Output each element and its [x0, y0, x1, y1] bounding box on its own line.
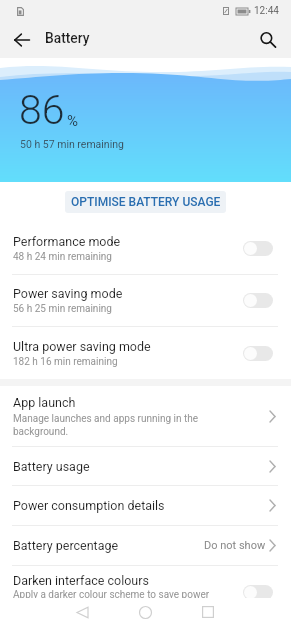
staticText: OPTIMISE BATTERY USAGE — [71, 195, 221, 209]
staticText: Power saving mode — [13, 286, 123, 301]
button[interactable]: Battery percentage — [0, 526, 291, 565]
staticText: 50 h 57 min remaining — [20, 138, 124, 150]
staticText: 12:44 — [254, 5, 279, 17]
staticText: Darken interface colours — [13, 573, 149, 588]
staticText: Ultra power saving mode — [13, 339, 151, 354]
staticText: Apply a darker colour scheme to save pow… — [13, 589, 210, 601]
button[interactable]: Battery usage — [0, 447, 291, 485]
staticText: Manage launches and apps running in the … — [13, 413, 199, 437]
staticText: Battery percentage — [13, 538, 119, 553]
staticText: Do not show — [204, 539, 266, 552]
button[interactable] — [243, 585, 273, 600]
staticText: Battery — [45, 30, 90, 46]
button[interactable]: Power consumption details — [0, 486, 291, 525]
staticText: Power consumption details — [13, 498, 165, 513]
staticText: Battery usage — [13, 459, 90, 474]
staticText: 86 — [19, 86, 65, 134]
button[interactable]: Power saving mode — [0, 275, 291, 326]
button[interactable]: Recents — [187, 596, 228, 628]
button[interactable]: Search — [250, 22, 286, 58]
button[interactable]: Back — [62, 596, 103, 628]
button[interactable]: Home — [125, 596, 166, 628]
button[interactable]: Ultra power saving mode — [0, 327, 291, 379]
button[interactable]: Back — [3, 22, 41, 58]
button[interactable]: Performance mode — [0, 222, 291, 274]
staticText: 182 h 16 min remaining — [13, 356, 118, 368]
button[interactable]: App launch — [0, 386, 291, 446]
staticText: App launch — [13, 395, 76, 410]
button[interactable]: OPTIMISE BATTERY USAGE — [65, 191, 226, 213]
staticText: % — [67, 112, 78, 130]
button[interactable]: Darken interface colours — [0, 566, 291, 630]
button[interactable] — [243, 346, 273, 361]
button[interactable] — [243, 241, 273, 256]
button[interactable] — [243, 293, 273, 308]
staticText: 48 h 24 min remaining — [13, 251, 112, 263]
staticText: Performance mode — [13, 234, 121, 249]
staticText: 56 h 25 min remaining — [13, 303, 112, 315]
